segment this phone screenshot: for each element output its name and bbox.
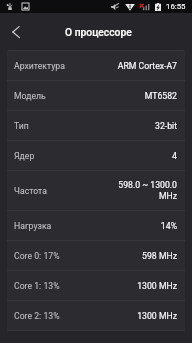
staticText: Модель bbox=[14, 91, 46, 101]
staticText: 32-bit bbox=[155, 121, 177, 131]
staticText: 14% bbox=[160, 221, 177, 231]
staticText: Ядер bbox=[14, 151, 35, 161]
staticText: Частота bbox=[14, 186, 47, 196]
button[interactable]: Core 1: 13% bbox=[7, 271, 185, 300]
button[interactable]: Core 0: 17% bbox=[7, 241, 185, 270]
staticText: 1300 MHz bbox=[137, 311, 177, 321]
button[interactable]: Ядер bbox=[7, 141, 185, 170]
staticText: 598 MHz bbox=[142, 251, 177, 261]
staticText: Core 0: 17% bbox=[14, 251, 60, 261]
staticText: Нагрузка bbox=[14, 221, 52, 231]
button[interactable]: Core 2: 13% bbox=[7, 301, 185, 330]
staticText: Core 1: 13% bbox=[14, 281, 60, 291]
button[interactable]: Архитектура bbox=[7, 51, 185, 80]
button[interactable]: Тип bbox=[7, 111, 185, 140]
staticText: ARM Cortex-A7 bbox=[117, 61, 177, 71]
staticText: 4 bbox=[172, 151, 177, 161]
staticText: Core 2: 13% bbox=[14, 311, 60, 321]
staticText: Тип bbox=[14, 121, 29, 131]
staticText: О процессоре bbox=[65, 26, 132, 38]
staticText: 16:55 bbox=[166, 2, 186, 11]
staticText: 598.0 ~ 1300.0 MHz bbox=[118, 180, 177, 201]
button[interactable]: Нагрузка bbox=[7, 211, 185, 240]
button[interactable]: Частота bbox=[7, 171, 185, 210]
button[interactable]: Back bbox=[0, 16, 32, 48]
staticText: MT6582 bbox=[144, 91, 177, 101]
staticText: 1300 MHz bbox=[137, 281, 177, 291]
staticText: Архитектура bbox=[14, 61, 65, 71]
button[interactable]: Модель bbox=[7, 81, 185, 110]
